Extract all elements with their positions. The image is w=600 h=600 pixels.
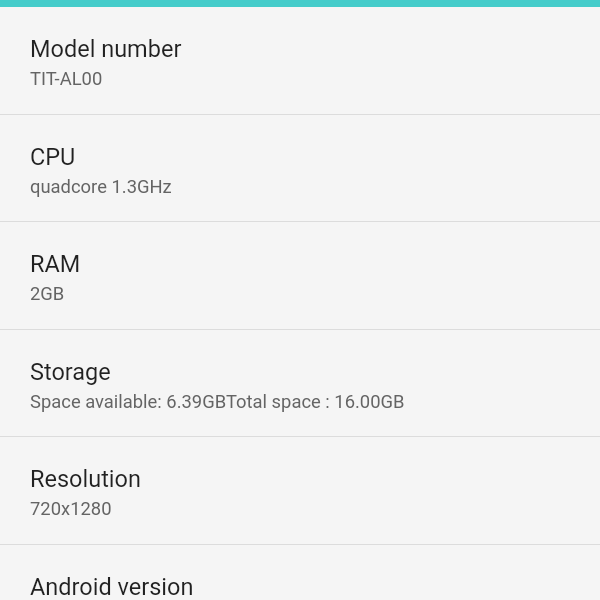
staticText: Model number: [30, 35, 182, 63]
button[interactable]: Model number: [0, 7, 600, 115]
staticText: 720x1280: [30, 498, 112, 520]
button[interactable]: Storage: [0, 330, 600, 438]
staticText: quadcore 1.3GHz: [30, 176, 172, 198]
staticText: TIT-AL00: [30, 68, 103, 90]
staticText: CPU: [30, 143, 76, 171]
staticText: RAM: [30, 250, 81, 278]
button[interactable]: Resolution: [0, 437, 600, 545]
button[interactable]: Android version: [0, 545, 600, 600]
staticText: Space available: 6.39GBTotal space : 16.…: [30, 391, 405, 413]
staticText: Storage: [30, 358, 111, 386]
button[interactable]: CPU: [0, 115, 600, 223]
staticText: Android version: [30, 573, 194, 600]
button[interactable]: RAM: [0, 222, 600, 330]
staticText: Resolution: [30, 465, 141, 493]
staticText: 2GB: [30, 283, 65, 305]
